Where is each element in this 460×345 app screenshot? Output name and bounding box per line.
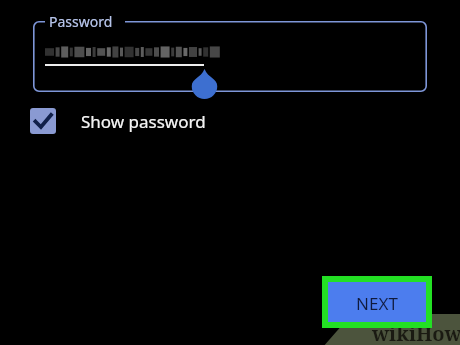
other: Text cursor handle <box>190 69 219 99</box>
staticText: NEXT <box>328 292 426 314</box>
button[interactable]: Show password <box>24 103 204 139</box>
staticText: Show password <box>81 110 206 133</box>
button[interactable] <box>33 21 427 92</box>
staticText: wikiHow <box>372 320 460 345</box>
button[interactable]: NEXT <box>322 276 432 328</box>
staticText: Password <box>49 12 113 31</box>
